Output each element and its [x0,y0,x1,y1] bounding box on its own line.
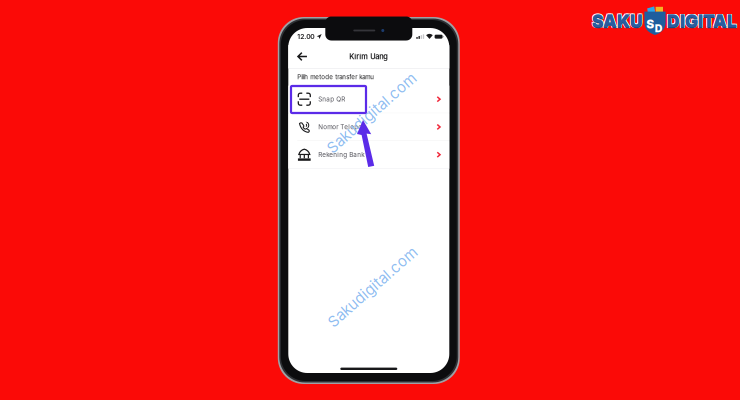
button[interactable]: Snap QR [288,86,449,113]
staticText: S [646,17,654,31]
staticText: Nomor Telepon [318,123,366,131]
staticText: Sakudigital.com [315,104,428,122]
staticText: Snap QR [318,95,345,103]
staticText: SAKU [591,11,642,32]
staticText: D [655,22,663,35]
staticText: DIGITAL [668,10,738,31]
staticText: SAKU [591,10,642,31]
staticText: 12.00 [297,32,314,41]
staticText: Kirim Uang [349,52,388,61]
staticText: DIGITAL [666,10,736,31]
staticText: DIGITAL [667,10,737,31]
staticText: DIGITAL [666,11,736,32]
button[interactable]: Back [291,45,313,67]
staticText: DIGITAL [667,11,737,32]
staticText: Sakudigital.com [316,278,429,296]
staticText: SAKU [592,11,643,32]
staticText: Pilih metode transfer kamu [297,73,374,81]
staticText: DIGITAL [668,11,738,32]
button[interactable]: Nomor Telepon [288,113,449,140]
staticText: SAKU [593,11,644,32]
staticText: SAKU [592,10,643,31]
button[interactable]: Rekening Bank [288,141,449,168]
staticText: SAKU [593,10,644,31]
staticText: Rekening Bank [318,151,364,158]
